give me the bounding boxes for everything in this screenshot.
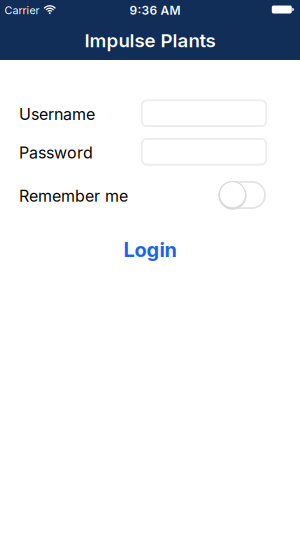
staticText: Username bbox=[19, 105, 95, 124]
staticText: Impulse Plants bbox=[84, 29, 215, 51]
button[interactable] bbox=[141, 138, 267, 165]
staticText: Carrier bbox=[4, 4, 39, 17]
staticText: Password bbox=[19, 143, 93, 162]
staticText: Remember me bbox=[19, 187, 128, 205]
staticText: 9:36 AM bbox=[129, 3, 180, 17]
button[interactable] bbox=[218, 181, 266, 209]
button[interactable] bbox=[141, 99, 267, 127]
staticText: Login bbox=[123, 238, 176, 262]
button[interactable]: Login bbox=[123, 238, 176, 262]
